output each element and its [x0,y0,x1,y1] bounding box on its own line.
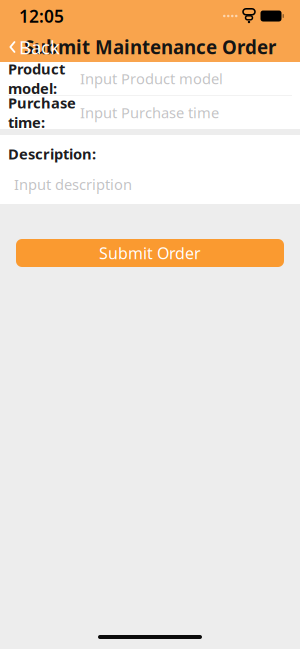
staticText: Input Product model [80,69,223,88]
staticText: Back [19,35,60,59]
staticText: Purchase time: [8,93,76,132]
staticText: Input Purchase time [80,103,219,122]
button[interactable]: Back [0,32,70,62]
button[interactable]: Input description [0,163,300,194]
staticText: Product model: [8,59,65,98]
button[interactable]: Submit Order [16,239,284,267]
button[interactable]: Purchase time: [0,96,300,129]
button[interactable]: Product model: [0,62,300,95]
staticText: 12:05 [19,4,64,27]
staticText: Description: [8,144,96,163]
staticText: Input description [14,174,132,194]
staticText: Submit Order [99,242,201,264]
staticText: Submit Maintenance Order [24,35,276,59]
